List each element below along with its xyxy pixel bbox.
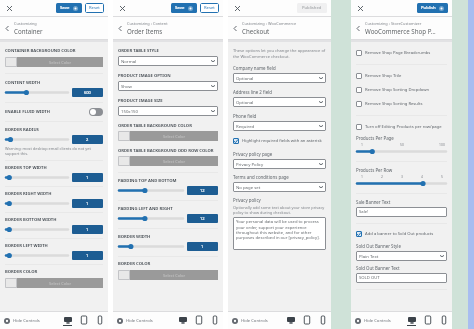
button[interactable]: Remove Shop Title bbox=[356, 71, 447, 81]
button[interactable]: Select Color bbox=[118, 156, 218, 166]
button[interactable]: Privacy Policy bbox=[233, 159, 326, 169]
button[interactable]: Back bbox=[228, 17, 331, 39]
button[interactable]: Remove Shop Page Breadcrumbs bbox=[356, 48, 447, 58]
button[interactable] bbox=[356, 147, 447, 156]
staticText: Save bbox=[175, 5, 185, 11]
button[interactable]: Plain Text bbox=[356, 251, 447, 261]
button[interactable]: Your personal data will be used to proce… bbox=[233, 217, 326, 250]
button[interactable]: Back bbox=[113, 17, 223, 39]
button[interactable]: Mobile preview bbox=[210, 316, 219, 326]
button[interactable]: Back bbox=[0, 17, 108, 39]
button[interactable]: Highlight required fields with an asteri… bbox=[233, 136, 326, 146]
button[interactable]: Desktop preview bbox=[63, 316, 72, 326]
button[interactable]: 12 bbox=[187, 214, 218, 223]
button[interactable]: Desktop preview bbox=[178, 316, 187, 326]
button[interactable]: Mobile preview bbox=[95, 316, 104, 326]
staticText: BORDER COLOR bbox=[118, 261, 151, 267]
button[interactable]: Sale! bbox=[356, 207, 447, 217]
staticText: Order Items bbox=[127, 27, 163, 35]
button[interactable]: Select Color bbox=[118, 270, 218, 280]
button[interactable]: Back bbox=[351, 21, 365, 35]
button[interactable]: Turn off Editing Products per row/page bbox=[356, 122, 447, 132]
button[interactable] bbox=[5, 135, 69, 144]
button[interactable]: Close customizer bbox=[117, 3, 128, 14]
button[interactable]: Normal bbox=[118, 56, 218, 66]
button[interactable]: Reset bbox=[85, 3, 104, 13]
button[interactable]: Tablet preview bbox=[423, 316, 432, 326]
staticText: PRODUCT IMAGE SIZE bbox=[118, 98, 163, 104]
staticText: 3 bbox=[401, 174, 403, 179]
button[interactable]: Toggle bbox=[89, 108, 103, 116]
button[interactable]: Mobile preview bbox=[318, 316, 327, 326]
button[interactable]: Remove Shop Sorting Dropdown bbox=[356, 85, 447, 95]
button[interactable] bbox=[5, 173, 69, 182]
button[interactable]: 1 bbox=[187, 242, 218, 251]
button[interactable]: Tablet preview bbox=[79, 316, 88, 326]
staticText: PADDING TOP AND BOTTOM bbox=[118, 178, 177, 184]
staticText: Privacy policy bbox=[233, 197, 261, 203]
button[interactable]: Publish bbox=[417, 3, 448, 13]
button[interactable]: Desktop preview bbox=[286, 316, 295, 326]
button[interactable]: 150x150 bbox=[118, 106, 218, 116]
button[interactable]: 1 bbox=[72, 199, 103, 208]
staticText: Warning: most desktop email clients do n… bbox=[5, 146, 103, 156]
button[interactable]: Save bbox=[171, 3, 197, 13]
button[interactable]: 600 bbox=[72, 88, 103, 97]
button[interactable]: Tablet preview bbox=[302, 316, 311, 326]
button[interactable]: Optional bbox=[233, 73, 326, 83]
button[interactable]: Hide Controls bbox=[4, 315, 40, 327]
button[interactable] bbox=[118, 214, 184, 223]
button[interactable]: 12 bbox=[187, 186, 218, 195]
button[interactable] bbox=[5, 88, 69, 97]
button[interactable] bbox=[118, 242, 184, 251]
button[interactable] bbox=[5, 225, 69, 234]
staticText: 1 bbox=[86, 227, 89, 232]
button[interactable]: Back bbox=[113, 21, 127, 35]
staticText: Select Color bbox=[163, 273, 186, 278]
button[interactable] bbox=[5, 251, 69, 260]
button[interactable]: Tablet preview bbox=[194, 316, 203, 326]
button[interactable]: Select Color bbox=[5, 57, 103, 67]
button[interactable]: Reset bbox=[200, 3, 219, 13]
button[interactable]: Hide Controls bbox=[117, 315, 153, 327]
staticText: Address line 2 field bbox=[233, 89, 272, 95]
button[interactable]: Close customizer bbox=[232, 3, 243, 14]
button[interactable] bbox=[5, 199, 69, 208]
button[interactable]: Back bbox=[351, 17, 452, 39]
staticText: Customizing ‹ Content bbox=[127, 21, 168, 26]
button[interactable]: Close customizer bbox=[355, 3, 366, 14]
button[interactable]: Close customizer bbox=[4, 3, 15, 14]
staticText: 150x150 bbox=[121, 108, 211, 114]
button[interactable]: 2 bbox=[72, 135, 103, 144]
button[interactable]: 1 bbox=[72, 173, 103, 182]
button[interactable]: Show bbox=[118, 81, 218, 91]
button[interactable]: Save bbox=[56, 3, 82, 13]
staticText: Select Color bbox=[163, 159, 186, 164]
staticText: Normal bbox=[121, 58, 211, 64]
button[interactable]: Back bbox=[228, 21, 242, 35]
button[interactable]: SOLD OUT bbox=[356, 273, 447, 283]
staticText: 12 bbox=[200, 188, 205, 193]
button[interactable]: Select Color bbox=[5, 278, 103, 288]
button[interactable]: Back bbox=[0, 21, 14, 35]
staticText: Remove Shop Sorting Dropdown bbox=[365, 87, 447, 93]
button[interactable] bbox=[356, 179, 447, 188]
button[interactable]: Remove Shop Sorting Results bbox=[356, 99, 447, 109]
button[interactable]: 1 bbox=[72, 251, 103, 260]
button[interactable] bbox=[118, 186, 184, 195]
staticText: Sold Out Banner Style bbox=[356, 243, 401, 249]
button[interactable]: Desktop preview bbox=[407, 316, 416, 326]
button[interactable]: Hide Controls bbox=[355, 315, 391, 327]
button[interactable]: Select Color bbox=[118, 131, 218, 141]
button[interactable]: Hide Controls bbox=[232, 315, 268, 327]
staticText: BORDER COLOR bbox=[5, 269, 38, 275]
button[interactable]: Published bbox=[297, 3, 327, 13]
button[interactable]: Required bbox=[233, 121, 326, 131]
staticText: Required bbox=[236, 123, 319, 129]
button[interactable]: Optional bbox=[233, 97, 326, 107]
staticText: ORDER TABLE BACKGROUND ODD ROW COLOR bbox=[118, 148, 214, 154]
button[interactable]: Add a banner to Sold Out products bbox=[356, 229, 447, 239]
button[interactable]: No page set bbox=[233, 182, 326, 192]
button[interactable]: Mobile preview bbox=[439, 316, 448, 326]
button[interactable]: 1 bbox=[72, 225, 103, 234]
